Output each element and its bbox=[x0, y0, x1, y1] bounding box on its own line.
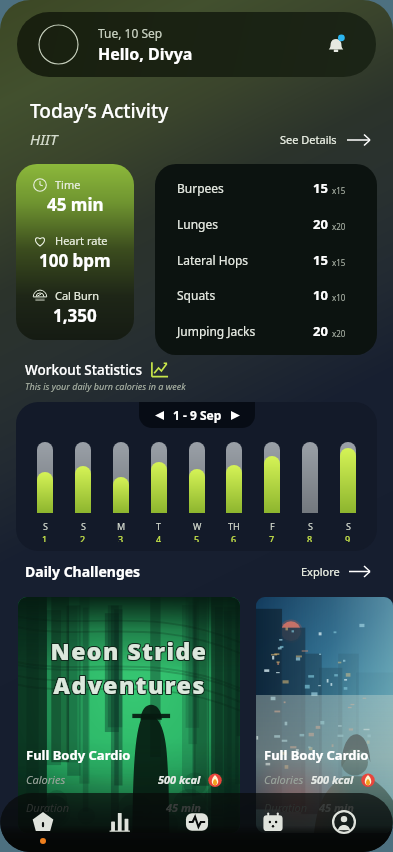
staticText: S bbox=[346, 520, 351, 532]
staticText: 3 bbox=[118, 533, 124, 542]
button[interactable]: Neon Stride bbox=[18, 597, 240, 833]
staticText: 1 bbox=[42, 533, 48, 542]
staticText: Workout Statistics bbox=[25, 361, 143, 379]
staticText: S bbox=[81, 520, 86, 532]
staticText: Adventures bbox=[53, 668, 206, 699]
staticText: Lunges bbox=[177, 216, 219, 232]
staticText: 45 min bbox=[319, 800, 354, 815]
staticText: 4 bbox=[156, 533, 162, 542]
staticText: Neon Stride bbox=[51, 636, 209, 667]
staticText: 45 min bbox=[47, 193, 104, 216]
button[interactable]: Time bbox=[16, 164, 134, 340]
staticText: 15 bbox=[313, 179, 328, 197]
staticText: Squats bbox=[177, 287, 216, 303]
staticText: Today’s Activity bbox=[30, 98, 169, 124]
staticText: 6 bbox=[231, 533, 237, 542]
button[interactable]: Notifications bbox=[320, 29, 352, 61]
staticText: 1,350 bbox=[53, 304, 97, 327]
button[interactable]: Tue, 10 Sep bbox=[17, 12, 376, 77]
staticText: x15 bbox=[332, 185, 346, 196]
button[interactable]: Home bbox=[16, 793, 70, 852]
staticText: Full Body Cardio bbox=[264, 746, 369, 764]
staticText: Explore bbox=[301, 564, 340, 579]
staticText: 8 bbox=[307, 533, 313, 542]
staticText: 9 bbox=[345, 533, 351, 542]
staticText: Adventures bbox=[52, 668, 205, 699]
staticText: TH bbox=[228, 520, 240, 532]
staticText: Hello, Divya bbox=[98, 43, 193, 65]
button[interactable]: Burpees bbox=[155, 164, 377, 355]
staticText: HIIT bbox=[30, 129, 58, 149]
staticText: Adventures bbox=[54, 669, 207, 700]
staticText: Duration bbox=[264, 800, 308, 815]
staticText: This is your daily burn calories in a we… bbox=[25, 380, 186, 392]
staticText: 500 kcal bbox=[158, 772, 201, 787]
staticText: Heart rate bbox=[55, 233, 108, 248]
staticText: Neon Stride bbox=[51, 634, 209, 665]
staticText: x20 bbox=[332, 221, 346, 232]
staticText: Lateral Hops bbox=[177, 252, 249, 268]
staticText: See Details bbox=[280, 132, 337, 147]
staticText: Neon Stride bbox=[49, 635, 207, 666]
staticText: Full Body Cardio bbox=[26, 746, 131, 764]
staticText: T bbox=[156, 520, 162, 532]
staticText: x15 bbox=[332, 257, 346, 268]
staticText: Neon Stride bbox=[49, 634, 207, 665]
staticText: 10 bbox=[313, 286, 328, 304]
staticText: Calories bbox=[26, 772, 66, 787]
staticText: S bbox=[43, 520, 48, 532]
button[interactable]: Full Body Cardio bbox=[256, 597, 393, 833]
staticText: Adventures bbox=[53, 669, 206, 700]
button[interactable]: Statistics bbox=[93, 793, 147, 852]
staticText: 500 kcal bbox=[311, 772, 354, 787]
staticText: Neon Stride bbox=[50, 635, 208, 666]
button[interactable]: Previous week bbox=[139, 402, 255, 428]
staticText: Calories bbox=[264, 772, 304, 787]
staticText: Neon Stride bbox=[50, 636, 208, 667]
button[interactable]: See Details bbox=[280, 132, 371, 147]
staticText: Neon Stride bbox=[49, 636, 207, 667]
staticText: Duration bbox=[26, 800, 70, 815]
button[interactable]: Activity bbox=[170, 793, 224, 852]
staticText: S bbox=[308, 520, 313, 532]
staticText: Jumping Jacks bbox=[177, 323, 256, 339]
staticText: 15 bbox=[313, 251, 328, 269]
staticText: 20 bbox=[313, 322, 328, 340]
staticText: Adventures bbox=[53, 670, 206, 701]
staticText: 5 bbox=[194, 533, 200, 542]
staticText: Adventures bbox=[52, 669, 205, 700]
staticText: M bbox=[117, 520, 126, 532]
staticText: F bbox=[270, 520, 275, 532]
staticText: 45 min bbox=[166, 800, 201, 815]
staticText: Time bbox=[55, 177, 81, 192]
other: Previous week bbox=[155, 411, 164, 420]
staticText: W bbox=[193, 520, 202, 532]
staticText: Cal Burn bbox=[55, 288, 100, 303]
staticText: Tue, 10 Sep bbox=[98, 25, 163, 41]
staticText: x20 bbox=[332, 328, 346, 339]
other: Next week bbox=[231, 411, 240, 420]
staticText: x10 bbox=[332, 292, 346, 303]
staticText: 2 bbox=[80, 533, 86, 542]
staticText: Burpees bbox=[177, 180, 224, 196]
staticText: 20 bbox=[313, 215, 328, 233]
button[interactable]: Profile bbox=[317, 793, 371, 852]
staticText: Daily Challenges bbox=[25, 562, 141, 581]
button[interactable]: Calendar bbox=[246, 793, 300, 852]
staticText: 7 bbox=[269, 533, 275, 542]
button[interactable]: Explore bbox=[301, 564, 371, 579]
staticText: Adventures bbox=[52, 670, 205, 701]
staticText: Adventures bbox=[54, 668, 207, 699]
staticText: 100 bpm bbox=[39, 249, 111, 272]
staticText: Neon Stride bbox=[51, 635, 209, 666]
staticText: 1 - 9 Sep bbox=[173, 407, 222, 423]
staticText: Neon Stride bbox=[50, 634, 208, 665]
staticText: Adventures bbox=[54, 670, 207, 701]
